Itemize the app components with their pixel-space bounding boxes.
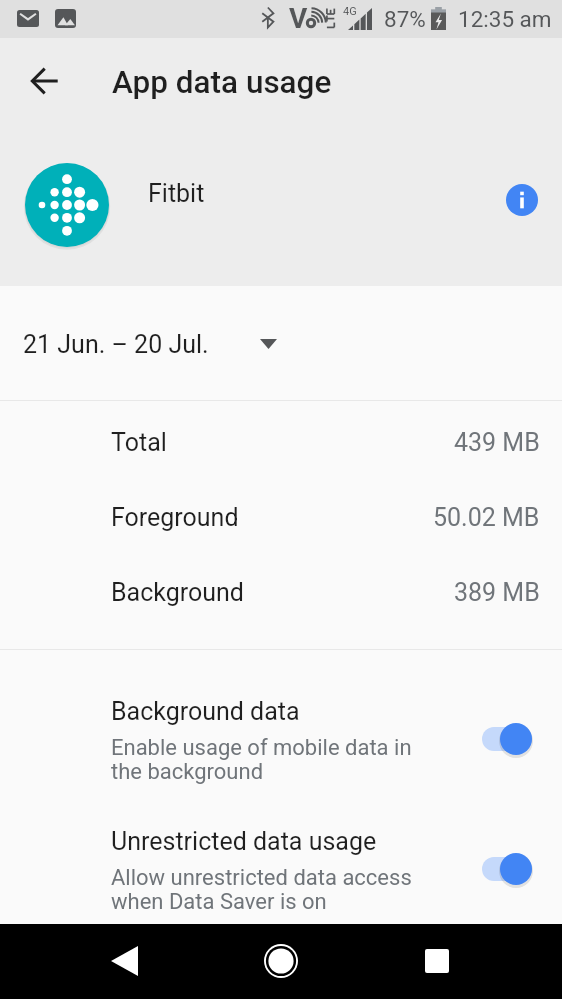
staticText: Background xyxy=(111,578,244,607)
button[interactable] xyxy=(0,155,562,255)
button[interactable]: Total xyxy=(0,404,562,479)
staticText: Background data xyxy=(111,697,300,726)
staticText: Unrestricted data usage xyxy=(111,827,377,856)
button[interactable]: App info xyxy=(498,176,546,224)
staticText: Foreground xyxy=(111,503,239,532)
staticText: 4G xyxy=(343,5,357,18)
staticText: 50.02 MB xyxy=(433,503,540,532)
staticText: Total xyxy=(111,428,167,457)
button[interactable]: Unrestricted data usage xyxy=(0,820,562,932)
staticText: 439 MB xyxy=(454,428,540,457)
button[interactable]: Home xyxy=(251,931,311,991)
staticText: V xyxy=(289,2,308,35)
staticText: Enable usage of mobile data in the backg… xyxy=(111,735,412,784)
button[interactable]: Recent apps xyxy=(407,931,467,991)
staticText: 87% xyxy=(384,6,426,32)
button[interactable]: Background data xyxy=(0,690,562,802)
staticText: 21 Jun. – 20 Jul. xyxy=(23,330,209,359)
button[interactable]: Back xyxy=(21,57,69,105)
staticText: App data usage xyxy=(112,64,332,101)
staticText: Allow unrestricted data access when Data… xyxy=(111,865,412,914)
button[interactable]: Background xyxy=(0,554,562,629)
button[interactable]: Foreground xyxy=(0,479,562,554)
button[interactable]: Back xyxy=(94,931,154,991)
staticText: Fitbit xyxy=(148,179,205,208)
staticText: 12:35 am xyxy=(458,6,552,32)
staticText: 389 MB xyxy=(454,578,540,607)
button[interactable]: 21 Jun. – 20 Jul. xyxy=(0,286,562,400)
